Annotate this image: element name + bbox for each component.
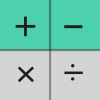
button[interactable]: Plus — [0, 0, 50, 50]
button[interactable]: Minus — [50, 0, 100, 50]
button[interactable]: Multiply — [0, 50, 50, 100]
button[interactable]: Divide — [50, 50, 100, 100]
